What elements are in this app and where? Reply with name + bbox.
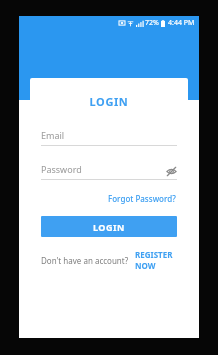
staticText: Forgot Password? — [108, 193, 176, 204]
staticText: 4:44 PM — [168, 18, 195, 28]
button[interactable]: Show password — [165, 165, 177, 177]
button[interactable]: LOGIN — [41, 216, 177, 237]
staticText: 72% — [145, 18, 159, 28]
button[interactable]: Forgot Password? — [107, 191, 177, 206]
button[interactable]: Password — [41, 163, 82, 175]
button[interactable]: Email — [41, 126, 177, 146]
staticText: Email — [41, 129, 65, 141]
staticText: LOGIN — [41, 94, 177, 109]
button[interactable]: REGISTER NOW — [134, 247, 177, 273]
staticText: Don't have an account? — [41, 255, 129, 266]
staticText: REGISTER NOW — [135, 249, 176, 271]
staticText: LOGIN — [93, 221, 125, 233]
